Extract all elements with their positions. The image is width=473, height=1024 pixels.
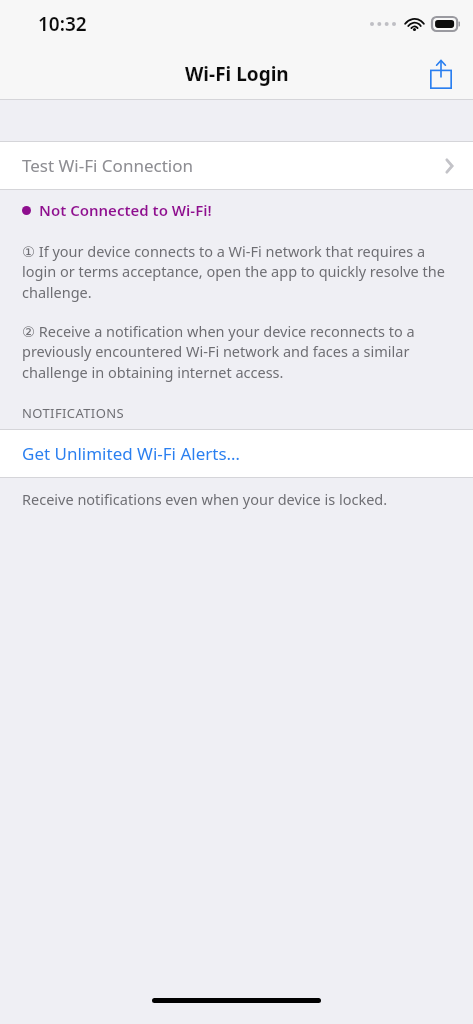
staticText: ① If your device connects to a Wi-Fi net… bbox=[22, 241, 449, 303]
staticText: ② Receive a notification when your devic… bbox=[22, 321, 449, 383]
staticText: Get Unlimited Wi-Fi Alerts… bbox=[22, 442, 240, 465]
button[interactable]: Get Unlimited Wi-Fi Alerts… bbox=[0, 430, 473, 477]
staticText: Wi-Fi Login bbox=[185, 61, 289, 87]
button[interactable]: Share bbox=[419, 52, 463, 96]
button[interactable]: Test Wi-Fi Connection bbox=[0, 142, 473, 189]
staticText: 10:32 bbox=[38, 11, 87, 37]
staticText: Test Wi-Fi Connection bbox=[22, 154, 193, 177]
staticText: Not Connected to Wi-Fi! bbox=[39, 200, 212, 220]
staticText: NOTIFICATIONS bbox=[22, 404, 125, 422]
staticText: Receive notifications even when your dev… bbox=[22, 489, 388, 509]
